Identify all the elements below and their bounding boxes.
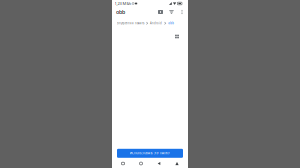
button[interactable]: More options [178,7,186,17]
button[interactable]: obb [168,21,174,25]
button[interactable]: Recents [116,159,130,168]
staticText: obb [116,8,125,16]
button[interactable]: ИСПОЛЬЗОВАТЬ ЭТУ ПАПКУ [117,149,183,158]
staticText: Внутренняя память [117,21,144,25]
button[interactable]: Android [150,21,162,25]
button[interactable]: Sort [166,7,176,17]
button[interactable]: Change view [172,32,181,41]
button[interactable]: Back [152,159,166,168]
button[interactable]: Внутренняя память [117,21,144,25]
staticText: 1,23 МБ/с [114,1,131,6]
button[interactable]: Home [134,159,148,168]
staticText: ИСПОЛЬЗОВАТЬ ЭТУ ПАПКУ [130,151,170,155]
button[interactable]: Hide keyboard [170,159,184,168]
staticText: Android [150,21,162,25]
staticText: obb [168,21,174,25]
button[interactable]: New folder [155,7,165,17]
